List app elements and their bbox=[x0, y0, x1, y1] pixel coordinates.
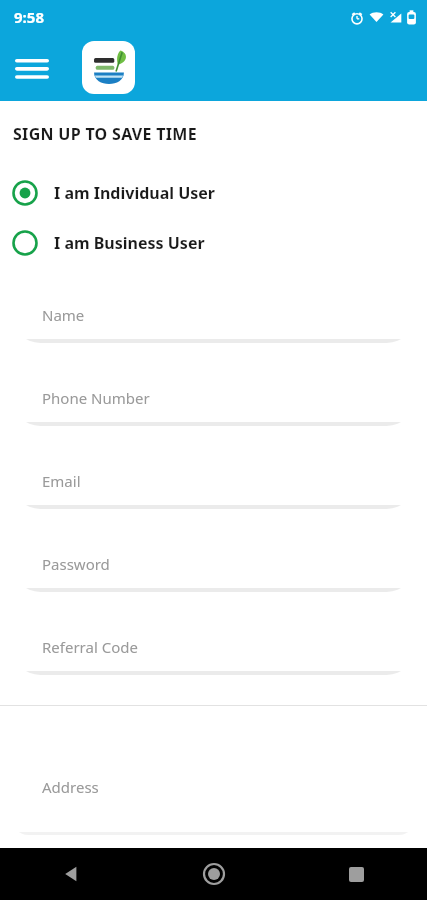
button[interactable]: Home bbox=[143, 848, 285, 900]
staticText: Phone Number bbox=[42, 388, 150, 408]
button[interactable]: Recent apps bbox=[285, 848, 427, 900]
button[interactable]: Back bbox=[0, 848, 143, 900]
staticText: I am Business User bbox=[54, 232, 205, 254]
staticText: 9:58 bbox=[14, 7, 44, 27]
button[interactable]: I am Business User bbox=[0, 223, 427, 263]
button[interactable]: Password bbox=[12, 536, 415, 592]
staticText: I am Individual User bbox=[54, 182, 216, 204]
button[interactable]: Email bbox=[12, 453, 415, 509]
staticText: Name bbox=[42, 305, 85, 325]
button[interactable]: Nutri Fresh logo bbox=[82, 41, 135, 94]
staticText: Email bbox=[42, 471, 81, 491]
staticText: SIGN UP TO SAVE TIME bbox=[13, 123, 197, 145]
staticText: Referral Code bbox=[42, 637, 138, 657]
button[interactable]: Referral Code bbox=[12, 619, 415, 675]
button[interactable]: Phone Number bbox=[12, 370, 415, 426]
staticText: Address bbox=[42, 777, 99, 797]
button[interactable]: I am Individual User bbox=[0, 173, 427, 213]
button[interactable]: Menu bbox=[6, 42, 58, 94]
button[interactable]: Address bbox=[12, 738, 415, 835]
button[interactable]: Name bbox=[12, 287, 415, 343]
staticText: Password bbox=[42, 554, 110, 574]
